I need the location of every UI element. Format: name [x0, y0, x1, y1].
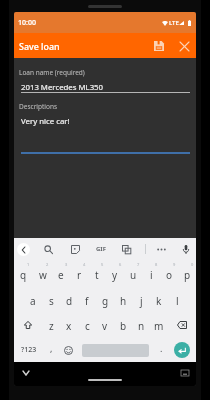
button[interactable]: h [114, 286, 132, 312]
staticText: t [95, 268, 99, 282]
button[interactable]: Symbols [18, 338, 40, 362]
staticText: 9 [173, 262, 176, 267]
staticText: 8 [155, 262, 158, 267]
button[interactable]: a [24, 286, 42, 312]
button[interactable]: Shift [14, 312, 42, 338]
button[interactable]: c [78, 312, 96, 338]
button[interactable]: 3 [52, 260, 70, 286]
button[interactable]: Translate [117, 240, 135, 258]
staticText: GIF [96, 245, 106, 253]
button[interactable]: 7 [124, 260, 142, 286]
button[interactable]: s [42, 286, 60, 312]
staticText: i [150, 268, 153, 282]
staticText: o [166, 268, 173, 282]
staticText: 4 [83, 262, 86, 267]
staticText: r [77, 268, 82, 282]
staticText: 1 [27, 262, 30, 267]
staticText: f [85, 294, 89, 308]
button[interactable]: Switch keyboard [179, 367, 191, 379]
staticText: z [49, 319, 54, 333]
staticText: h [120, 294, 127, 308]
staticText: e [58, 268, 64, 282]
button[interactable]: Enter [174, 342, 190, 358]
staticText: a [30, 294, 36, 308]
staticText: x [66, 319, 72, 333]
button[interactable]: b [114, 312, 132, 338]
button[interactable]: Emoji [60, 338, 76, 362]
staticText: w [39, 268, 47, 282]
staticText: 0 [191, 262, 194, 267]
button[interactable]: 0 [178, 260, 196, 286]
button[interactable]: l [168, 286, 186, 312]
staticText: u [130, 268, 137, 282]
button[interactable]: 5 [88, 260, 106, 286]
staticText: Save loan [19, 40, 60, 52]
button[interactable]: Save [149, 36, 169, 56]
staticText: g [102, 294, 109, 308]
button[interactable]: k [150, 286, 168, 312]
staticText: y [112, 268, 118, 282]
staticText: 10:00 [18, 18, 36, 28]
staticText: d [66, 294, 73, 308]
button[interactable]: Period [153, 338, 169, 362]
button[interactable]: j [132, 286, 150, 312]
button[interactable]: n [132, 312, 150, 338]
button[interactable]: z [42, 312, 60, 338]
staticText: , [50, 342, 53, 354]
button[interactable]: 8 [142, 260, 160, 286]
staticText: 5 [101, 262, 104, 267]
staticText: j [140, 294, 143, 308]
staticText: m [154, 319, 164, 333]
button[interactable]: More options [152, 240, 170, 258]
button[interactable]: g [96, 286, 114, 312]
button[interactable]: Hide keyboard [19, 366, 33, 380]
staticText: 7 [137, 262, 140, 267]
staticText: Descriptions [19, 102, 58, 111]
staticText: ?123 [21, 345, 37, 355]
button[interactable]: GIF [92, 240, 110, 258]
button[interactable]: 2 [33, 260, 52, 286]
button[interactable]: Search [39, 240, 57, 258]
button[interactable]: 1 [14, 260, 33, 286]
staticText: Loan name (required) [19, 68, 85, 77]
button[interactable]: f [78, 286, 96, 312]
staticText: k [156, 294, 162, 308]
staticText: . [160, 342, 163, 354]
staticText: q [20, 268, 27, 282]
button[interactable]: Space [81, 338, 150, 362]
staticText: c [85, 319, 90, 333]
staticText: l [176, 294, 179, 308]
staticText: n [138, 319, 145, 333]
staticText: Very nice car! [21, 116, 70, 127]
staticText: p [184, 268, 191, 282]
button[interactable]: v [96, 312, 114, 338]
staticText: 2 [46, 262, 49, 267]
button[interactable]: Backspace [168, 312, 196, 338]
staticText: 6 [119, 262, 122, 267]
button[interactable]: m [150, 312, 168, 338]
button[interactable]: Back [17, 243, 30, 256]
staticText: 3 [65, 262, 68, 267]
staticText: b [120, 319, 127, 333]
button[interactable]: Comma [43, 338, 59, 362]
button[interactable]: Stickers [66, 240, 84, 258]
button[interactable]: 4 [70, 260, 88, 286]
staticText: LTE [169, 19, 179, 27]
button[interactable]: Voice input [177, 240, 195, 258]
button[interactable]: x [60, 312, 78, 338]
button[interactable]: 6 [106, 260, 124, 286]
button[interactable]: d [60, 286, 78, 312]
staticText: v [102, 319, 108, 333]
button[interactable]: Close [174, 36, 194, 56]
button[interactable]: 9 [160, 260, 178, 286]
staticText: 2013 Mercedes ML350 [21, 82, 104, 93]
staticText: s [49, 294, 54, 308]
